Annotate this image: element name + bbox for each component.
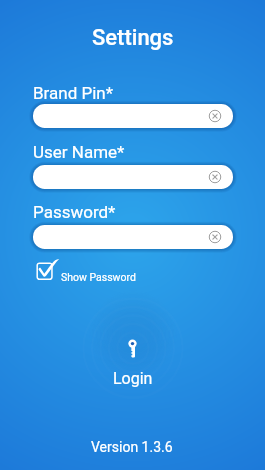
staticText: Password* [33,202,116,222]
staticText: Brand Pin* [33,83,114,103]
other: Clear User Name [209,171,221,183]
staticText: Settings [92,25,174,51]
staticText: Login [113,369,153,388]
button[interactable]: Clear Brand Pin [33,104,233,128]
staticText: User Name* [33,142,125,162]
staticText: Show Password [61,271,136,283]
other: Login [126,338,140,360]
button[interactable]: Clear Password [33,225,233,249]
other: Clear Password [209,231,221,243]
button[interactable]: Login [100,336,165,386]
button[interactable]: Show Password [32,258,135,284]
staticText: Version 1.3.6 [91,439,173,455]
other: Clear Brand Pin [209,110,221,122]
button[interactable]: Clear User Name [33,165,233,189]
